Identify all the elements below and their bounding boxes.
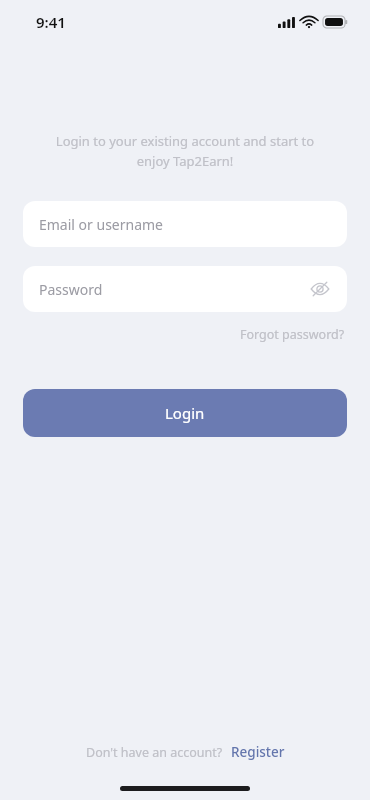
staticText: Don't have an account? bbox=[86, 744, 223, 761]
staticText: Register bbox=[231, 743, 285, 761]
button[interactable]: Login bbox=[23, 389, 347, 437]
button[interactable]: Show password bbox=[307, 276, 333, 302]
button[interactable]: Forgot password? bbox=[238, 324, 347, 345]
staticText: Password bbox=[39, 280, 103, 299]
staticText: Forgot password? bbox=[240, 326, 345, 343]
button[interactable]: Password bbox=[23, 266, 347, 312]
staticText: Login to your existing account and start… bbox=[38, 132, 332, 170]
button[interactable]: Register bbox=[231, 743, 285, 761]
button[interactable]: Email or username bbox=[23, 201, 347, 247]
staticText: 9:41 bbox=[36, 12, 66, 32]
staticText: Login bbox=[165, 403, 205, 423]
staticText: Email or username bbox=[39, 215, 164, 234]
